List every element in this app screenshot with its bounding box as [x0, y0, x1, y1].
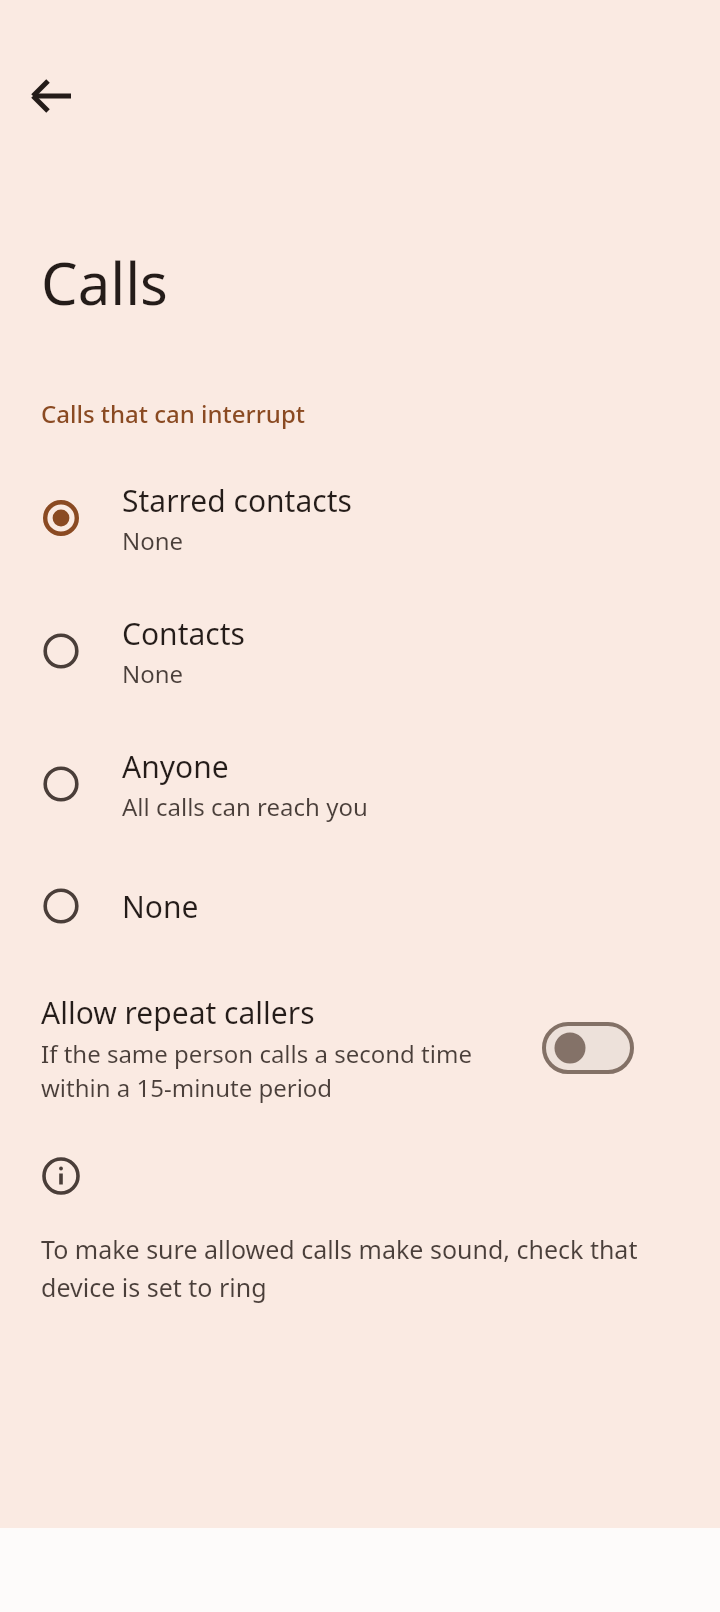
button[interactable]: Information: [24, 1139, 98, 1213]
button[interactable]: Starred contacts: [0, 462, 720, 574]
staticText: Calls that can interrupt: [41, 397, 305, 430]
staticText: If the same person calls a second time w…: [41, 1037, 510, 1104]
staticText: To make sure allowed calls make sound, c…: [41, 1232, 681, 1304]
staticText: None: [122, 657, 184, 690]
staticText: All calls can reach you: [122, 790, 368, 823]
staticText: Contacts: [122, 613, 245, 654]
button[interactable]: Allow repeat callers: [0, 985, 720, 1110]
staticText: Allow repeat callers: [41, 992, 315, 1033]
button[interactable]: Allow repeat callers toggle: [542, 1022, 634, 1074]
button[interactable]: None: [0, 862, 720, 950]
staticText: Calls: [41, 243, 168, 322]
button[interactable]: Back: [8, 52, 96, 140]
button[interactable]: Anyone: [0, 728, 720, 840]
staticText: None: [122, 524, 184, 557]
staticText: Anyone: [122, 746, 229, 787]
button[interactable]: Contacts: [0, 595, 720, 707]
staticText: Starred contacts: [122, 480, 352, 521]
staticText: None: [122, 886, 199, 927]
